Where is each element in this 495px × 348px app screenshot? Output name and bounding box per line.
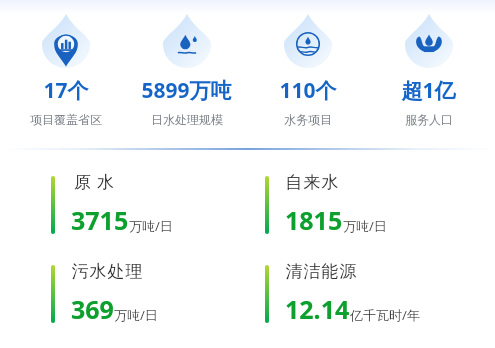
other: 服务人口 [405,14,453,68]
staticText: 日水处理规模 [151,112,223,127]
button[interactable]: 水务项目 [247,14,368,127]
button[interactable]: 污水处理 [51,261,247,326]
staticText: 万吨/日 [343,217,387,235]
button[interactable]: 自来水 [265,172,495,237]
staticText: 亿千瓦时/年 [350,306,420,324]
button[interactable]: 项目覆盖省区 [6,14,126,127]
staticText: 369 [71,292,114,326]
staticText: 服务人口 [405,112,453,127]
staticText: 1815 [285,203,343,237]
staticText: 项目覆盖省区 [30,112,102,127]
staticText: 17个 [43,76,89,105]
button[interactable]: 清洁能源 [265,261,495,326]
button[interactable]: 服务人口 [368,14,489,127]
button[interactable]: 日水处理规模 [126,14,247,127]
staticText: 5899万吨 [141,76,232,105]
staticText: 自来水 [285,172,339,193]
staticText: 12.14 [285,292,350,326]
other: 项目覆盖省区 [42,14,90,68]
staticText: 万吨/日 [114,306,158,324]
staticText: 污水处理 [71,261,143,282]
staticText: 110个 [279,76,337,105]
staticText: 原水 [71,172,117,193]
staticText: 3715 [71,203,129,237]
other: 水务项目 [284,14,332,68]
button[interactable]: 原水 [51,172,247,237]
staticText: 超1亿 [401,76,456,105]
other: 日水处理规模 [163,14,211,68]
staticText: 清洁能源 [285,261,357,282]
staticText: 万吨/日 [129,217,173,235]
staticText: 水务项目 [284,112,332,127]
